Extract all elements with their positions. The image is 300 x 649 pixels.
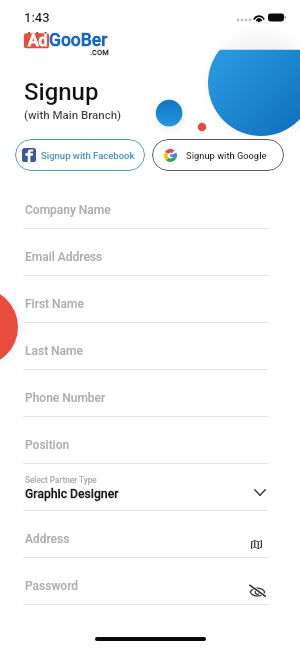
button[interactable]: Pick address on map — [251, 540, 262, 549]
button[interactable]: Show password — [249, 584, 266, 597]
staticText: GooBer — [49, 30, 108, 51]
staticText: 1:43 — [24, 10, 50, 25]
staticText: Last Name — [25, 344, 83, 358]
staticText: (with Main Branch) — [24, 108, 122, 121]
staticText: Signup with Facebook — [41, 150, 135, 161]
staticText: Position — [25, 438, 70, 452]
button[interactable]: First Name — [23, 288, 268, 323]
staticText: Ad — [28, 31, 48, 50]
staticText: Company Name — [25, 203, 111, 217]
button[interactable]: Address — [23, 523, 268, 558]
button[interactable]: Password — [23, 570, 268, 605]
staticText: Signup — [24, 78, 99, 106]
staticText: .COM — [90, 48, 109, 57]
button[interactable]: Select Partner Type — [23, 470, 268, 511]
staticText: Select Partner Type — [25, 475, 97, 485]
staticText: Graphic Designer — [25, 487, 119, 501]
staticText: First Name — [25, 297, 84, 311]
staticText: Phone Number — [25, 391, 106, 405]
button[interactable]: Email Address — [23, 241, 268, 276]
button[interactable]: Company Name — [23, 194, 268, 229]
staticText: Email Address — [25, 250, 103, 264]
button[interactable]: Phone Number — [23, 382, 268, 417]
button[interactable]: Last Name — [23, 335, 268, 370]
staticText: Password — [25, 579, 79, 593]
button[interactable]: Signup with Google — [152, 139, 284, 171]
staticText: Address — [25, 532, 70, 546]
button[interactable]: Position — [23, 429, 268, 464]
staticText: Signup with Google — [186, 150, 267, 161]
button[interactable]: Signup with Facebook — [15, 139, 145, 171]
